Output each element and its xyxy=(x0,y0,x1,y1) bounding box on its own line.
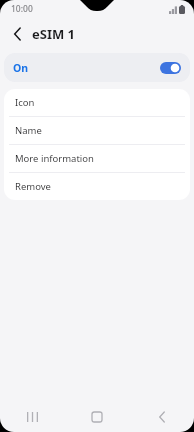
other: Toggle eSIM on xyxy=(160,62,181,74)
button[interactable]: Icon xyxy=(4,89,190,116)
button[interactable]: Back xyxy=(129,402,194,432)
button[interactable]: Home xyxy=(64,402,129,432)
button[interactable]: Back xyxy=(7,24,27,44)
button[interactable]: Remove xyxy=(4,173,190,200)
button[interactable]: Name xyxy=(4,117,190,144)
staticText: On xyxy=(13,61,29,75)
staticText: Name xyxy=(15,124,42,137)
button[interactable]: Recent apps xyxy=(0,402,64,432)
staticText: Remove xyxy=(15,180,51,193)
staticText: More information xyxy=(15,152,94,165)
staticText: eSIM 1 xyxy=(32,25,76,43)
staticText: Icon xyxy=(15,96,35,109)
staticText: 10:00 xyxy=(11,3,33,15)
button[interactable]: On xyxy=(4,53,190,82)
button[interactable]: More information xyxy=(4,145,190,172)
